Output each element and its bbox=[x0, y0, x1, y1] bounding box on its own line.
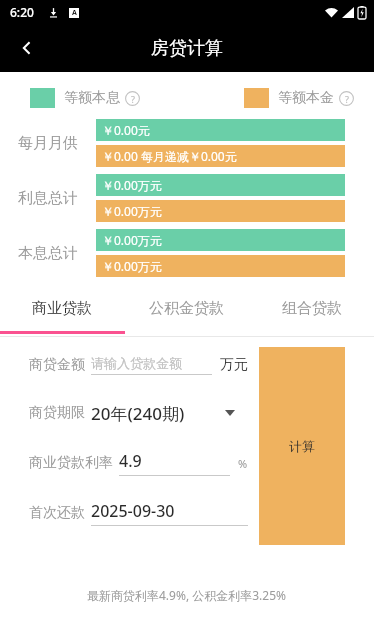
staticText: 等额本息 bbox=[64, 89, 120, 107]
staticText: 利息总计 bbox=[18, 189, 78, 208]
staticText: 公积金贷款 bbox=[149, 299, 224, 318]
button[interactable]: 公积金贷款 bbox=[124, 290, 249, 326]
staticText: ￥0.00万元 bbox=[102, 203, 162, 219]
staticText: 房贷计算 bbox=[151, 37, 223, 60]
staticText: 本息总计 bbox=[18, 244, 78, 263]
button[interactable]: 商贷期限 bbox=[0, 396, 254, 430]
other: Expand bbox=[222, 405, 238, 421]
staticText: 商贷期限 bbox=[29, 404, 85, 422]
staticText: 计算 bbox=[289, 438, 315, 454]
staticText: 等额本金 bbox=[278, 89, 334, 107]
staticText: 万元 bbox=[220, 356, 248, 374]
staticText: ￥0.00万元 bbox=[102, 177, 162, 193]
staticText: 20年(240期) bbox=[91, 402, 185, 425]
button[interactable]: 等额本息 bbox=[30, 88, 140, 108]
button[interactable]: Back bbox=[6, 27, 48, 69]
staticText: ? bbox=[345, 93, 349, 105]
staticText: ￥0.00 每月递减￥0.00元 bbox=[102, 148, 237, 164]
staticText: 组合贷款 bbox=[282, 299, 342, 318]
staticText: 商业贷款利率 bbox=[29, 454, 113, 472]
button[interactable]: 计算 bbox=[259, 347, 345, 545]
staticText: 首次还款 bbox=[29, 504, 85, 522]
staticText: 请输入贷款金额 bbox=[91, 355, 182, 371]
staticText: 商业贷款 bbox=[32, 299, 92, 318]
button[interactable]: 组合贷款 bbox=[249, 290, 374, 326]
staticText: 6:20 bbox=[10, 4, 34, 20]
staticText: % bbox=[238, 456, 248, 471]
staticText: ? bbox=[131, 93, 135, 105]
button[interactable]: 等额本金 bbox=[244, 88, 354, 108]
button[interactable]: 商业贷款 bbox=[0, 290, 124, 326]
staticText: 4.9 bbox=[119, 450, 142, 472]
staticText: ￥0.00万元 bbox=[102, 258, 162, 274]
staticText: ￥0.00万元 bbox=[102, 232, 162, 248]
staticText: 2025-09-30 bbox=[91, 500, 175, 522]
staticText: ￥0.00元 bbox=[102, 122, 150, 138]
staticText: 最新商贷利率4.9%, 公积金利率3.25% bbox=[87, 587, 287, 603]
staticText: 商贷金额 bbox=[29, 356, 85, 374]
staticText: A bbox=[72, 8, 77, 18]
staticText: 每月月供 bbox=[18, 134, 78, 153]
